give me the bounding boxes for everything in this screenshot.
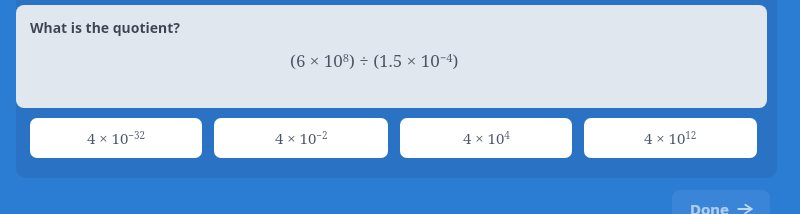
staticText: 4 × 10−32 [87, 128, 146, 148]
staticText: What is the quotient? [30, 18, 180, 37]
staticText: 4 × 10−2 [275, 128, 328, 148]
staticText: 4 × 1012 [644, 128, 697, 148]
button[interactable]: 4 × 1012 [584, 118, 757, 158]
button[interactable]: 4 × 104 [400, 118, 572, 158]
staticText: 4 × 104 [463, 128, 510, 148]
staticText: Done [690, 199, 730, 214]
button[interactable]: 4 × 10−2 [214, 118, 388, 158]
button[interactable]: 4 × 10−32 [30, 118, 202, 158]
button[interactable]: Done [672, 190, 770, 214]
other: Done [737, 201, 753, 214]
staticText: (6 × 108) ÷ (1.5 × 10−4) [290, 49, 459, 72]
